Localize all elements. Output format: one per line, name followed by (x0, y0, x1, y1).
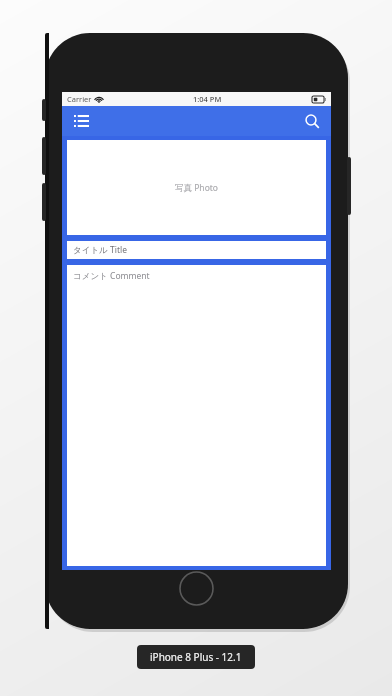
button[interactable]: タイトル Title (67, 241, 326, 259)
staticText: コメント Comment (73, 270, 150, 282)
staticText: タイトル Title (73, 244, 127, 256)
staticText: 写真 Photo (175, 182, 218, 194)
button[interactable]: コメント Comment (67, 265, 326, 566)
staticText: iPhone 8 Plus - 12.1 (150, 650, 242, 664)
button[interactable]: Menu (69, 109, 93, 133)
button[interactable]: 写真 Photo (67, 140, 326, 235)
staticText: 1:04 PM (193, 94, 222, 104)
button[interactable]: Search (300, 109, 324, 133)
staticText: Carrier (67, 94, 92, 104)
